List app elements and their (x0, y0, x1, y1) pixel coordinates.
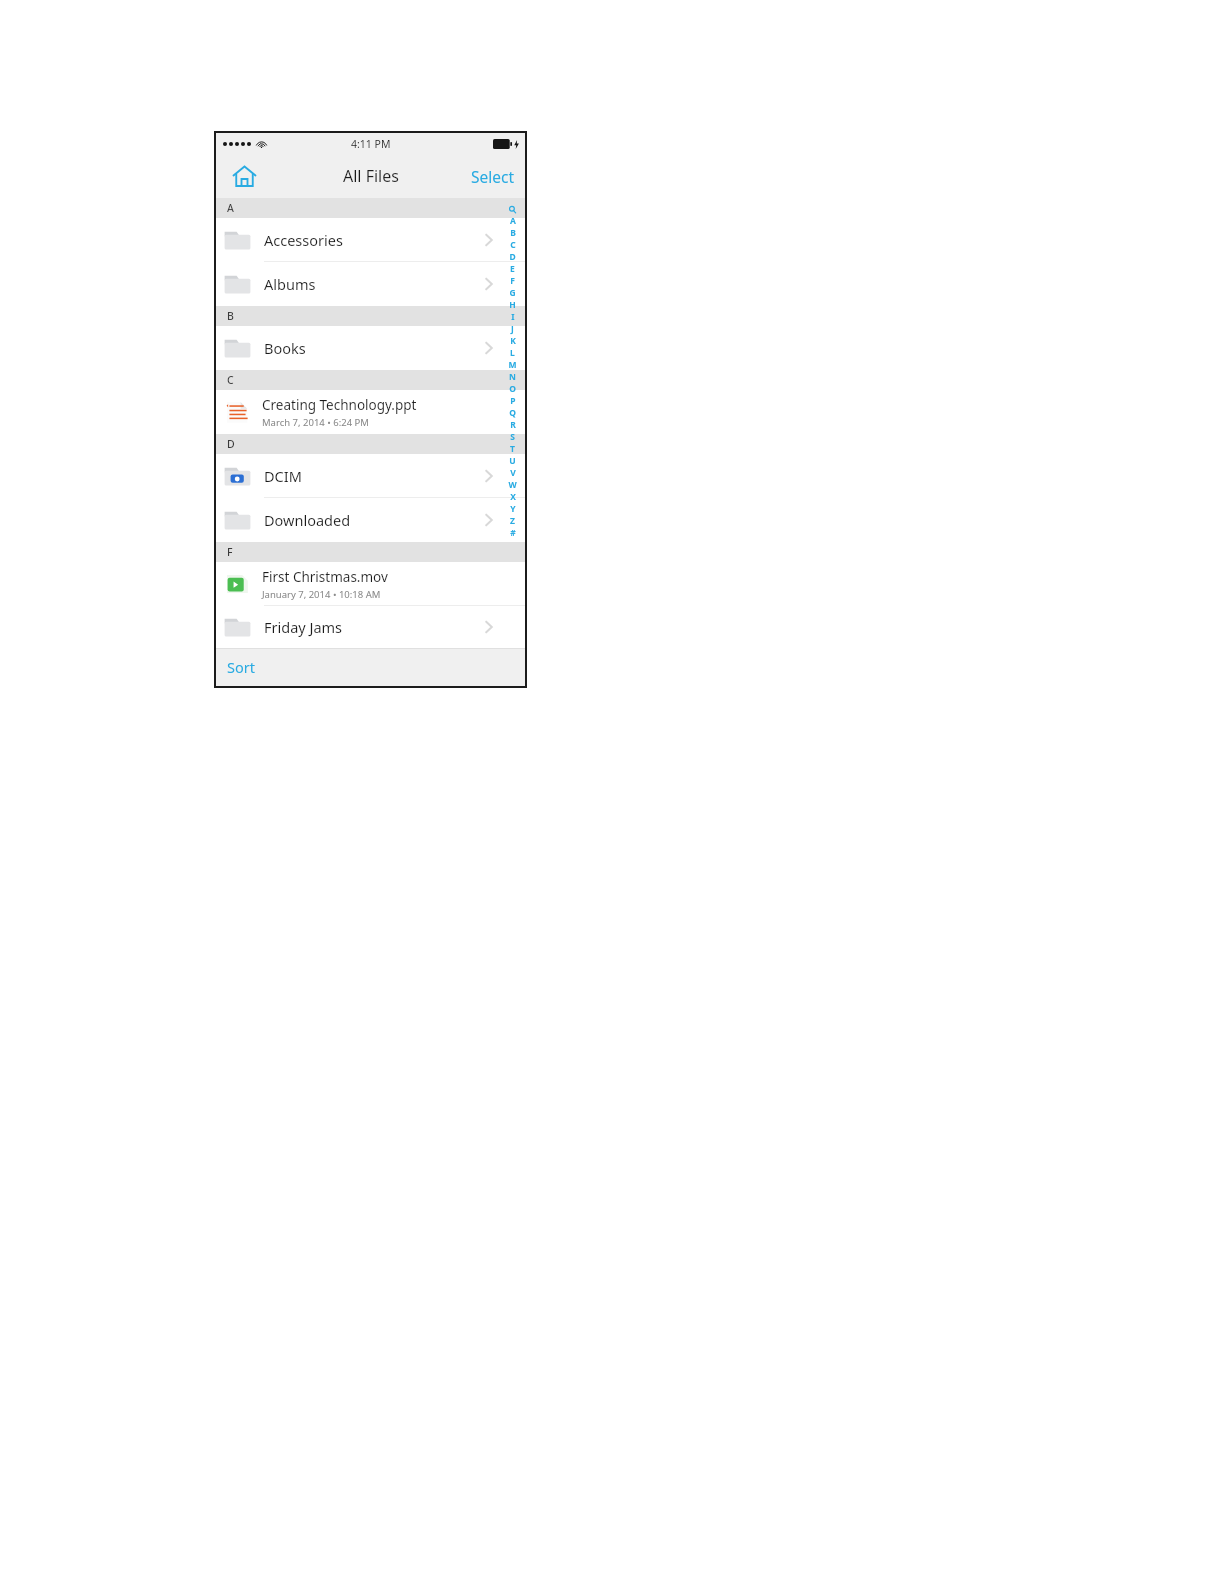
staticText: E (510, 263, 515, 275)
staticText: First Christmas.mov (262, 568, 388, 586)
staticText: J (511, 323, 514, 335)
staticText: DCIM (264, 466, 485, 486)
staticText: A (227, 201, 234, 215)
staticText: R (510, 419, 516, 431)
staticText: F (510, 275, 515, 287)
staticText: Q (509, 407, 516, 419)
staticText: Z (510, 515, 515, 527)
staticText: D (509, 251, 516, 263)
staticText: C (227, 373, 234, 387)
staticText: March 7, 2014 • 6:24 PM (262, 416, 369, 429)
staticText: Sort (227, 657, 255, 677)
button[interactable]: Albums (216, 262, 525, 306)
button[interactable]: Sort (216, 651, 265, 683)
staticText: I (511, 311, 515, 323)
staticText: M (508, 359, 517, 371)
staticText: D (227, 437, 235, 451)
staticText: H (509, 299, 516, 311)
staticText: All Files (343, 165, 399, 187)
button[interactable]: Index (506, 206, 519, 539)
staticText: Creating Technology.ppt (262, 396, 417, 414)
button[interactable]: Friday Jams (216, 606, 525, 648)
button[interactable]: DCIM (216, 454, 525, 498)
staticText: K (510, 335, 516, 347)
staticText: January 7, 2014 • 10:18 AM (262, 588, 381, 601)
button[interactable]: First Christmas.mov (216, 562, 525, 606)
staticText: N (509, 371, 516, 383)
staticText: A (510, 215, 516, 227)
staticText: T (510, 443, 515, 455)
staticText: Y (510, 503, 516, 515)
staticText: O (509, 383, 516, 395)
button[interactable]: Creating Technology.ppt (216, 390, 525, 434)
staticText: U (509, 455, 516, 467)
staticText: # (510, 527, 516, 539)
button[interactable]: Downloaded (216, 498, 525, 542)
staticText: Select (471, 166, 515, 187)
staticText: W (508, 479, 517, 491)
button[interactable]: Home (229, 161, 259, 191)
staticText: G (509, 287, 516, 299)
staticText: V (510, 467, 516, 479)
staticText: B (227, 309, 234, 323)
staticText: B (510, 227, 516, 239)
staticText: Albums (264, 274, 485, 294)
staticText: S (510, 431, 515, 443)
staticText: C (510, 239, 516, 251)
staticText: P (510, 395, 516, 407)
button[interactable]: Books (216, 326, 525, 370)
button[interactable]: Select (467, 160, 519, 193)
button[interactable]: Accessories (216, 218, 525, 262)
staticText: 4:11 PM (351, 137, 391, 151)
staticText: F (227, 545, 233, 559)
staticText: Downloaded (264, 510, 485, 530)
staticText: X (510, 491, 516, 503)
staticText: L (510, 347, 515, 359)
staticText: Accessories (264, 230, 485, 250)
staticText: Friday Jams (264, 617, 485, 637)
staticText: Books (264, 338, 485, 358)
